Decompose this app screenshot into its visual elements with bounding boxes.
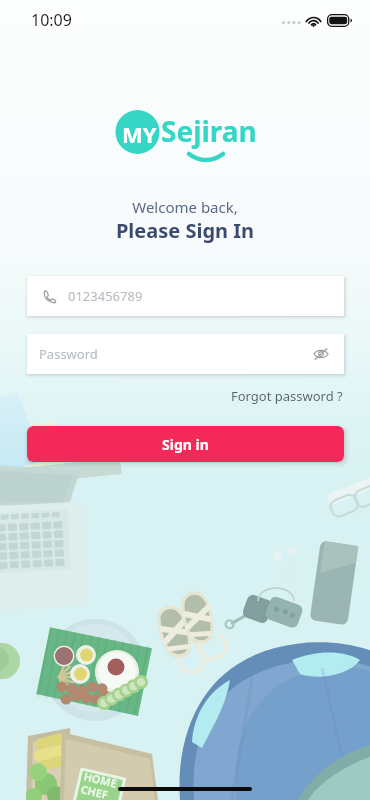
button[interactable]: Show password	[308, 341, 334, 367]
staticText: MY	[122, 119, 157, 149]
button[interactable]: Forgot password ?	[231, 385, 343, 407]
button[interactable]: 0123456789	[27, 276, 344, 316]
button[interactable]: Sign in	[27, 426, 344, 462]
staticText: Sign in	[162, 435, 209, 454]
staticText: 10:09	[31, 9, 72, 31]
staticText: Please Sign In	[0, 217, 370, 244]
button[interactable]: Password	[27, 334, 344, 374]
staticText: HOME CHEF	[79, 768, 119, 800]
staticText: Welcome back,	[0, 197, 370, 217]
staticText: 0123456789	[68, 287, 143, 305]
staticText: Sejiran	[161, 112, 257, 150]
staticText: Password	[39, 345, 308, 363]
